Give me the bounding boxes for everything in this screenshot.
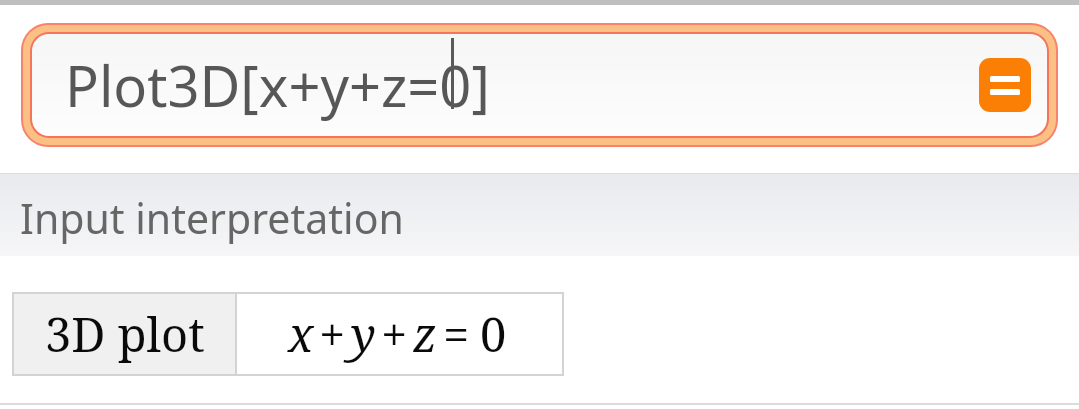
button[interactable]: Plot3D[x+y+z=0] bbox=[21, 23, 1058, 147]
staticText: z bbox=[413, 302, 438, 366]
staticText: y bbox=[351, 302, 376, 366]
staticText: Plot3D[x+y+z=0] bbox=[65, 47, 490, 123]
staticText: 0 bbox=[480, 302, 507, 366]
staticText: = bbox=[443, 302, 470, 366]
staticText: Input interpretation bbox=[20, 190, 404, 246]
button[interactable]: Compute bbox=[979, 58, 1031, 112]
staticText: + bbox=[381, 302, 408, 366]
staticText: x bbox=[288, 302, 314, 366]
staticText: 3D plot bbox=[45, 302, 205, 366]
staticText: + bbox=[319, 302, 346, 366]
